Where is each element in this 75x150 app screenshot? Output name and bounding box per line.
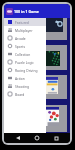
staticText: Racing Driving (15, 68, 38, 72)
button[interactable]: Game Title (4, 105, 70, 133)
button[interactable]: Collection (4, 50, 46, 58)
button[interactable]: Board (4, 90, 46, 98)
button[interactable]: Home (32, 133, 42, 143)
button[interactable]: Recents (51, 133, 61, 143)
button[interactable]: Game Title (4, 75, 70, 105)
staticText: Action (15, 76, 25, 80)
staticText: Puzzle Logic (15, 60, 34, 64)
staticText: Sports (15, 44, 25, 48)
button[interactable]: Multiplayer (4, 26, 46, 34)
staticText: Featured (15, 20, 29, 24)
button[interactable]: Back (13, 133, 23, 143)
button[interactable]: Sports (4, 42, 46, 50)
staticText: Board (15, 92, 25, 96)
button[interactable]: Game Title (4, 45, 70, 75)
staticText: Game Title (7, 33, 24, 37)
staticText: 100 in 1 Game (14, 9, 39, 14)
button[interactable]: Arcade (4, 34, 46, 42)
button[interactable]: Game Title (4, 18, 70, 45)
button[interactable]: Shooting (4, 82, 46, 90)
staticText: Shooting (15, 84, 29, 88)
staticText: Game Title (7, 95, 24, 99)
button[interactable]: Featured (4, 18, 46, 26)
staticText: Game Title (7, 67, 24, 70)
button[interactable]: Puzzle Logic (4, 58, 46, 66)
button[interactable]: Action (4, 74, 46, 82)
staticText: Collection (15, 52, 31, 56)
button[interactable]: Racing Driving (4, 66, 46, 74)
staticText: Arcade (15, 36, 26, 40)
button[interactable]: App icon (6, 8, 13, 15)
staticText: Multiplayer (15, 28, 33, 32)
